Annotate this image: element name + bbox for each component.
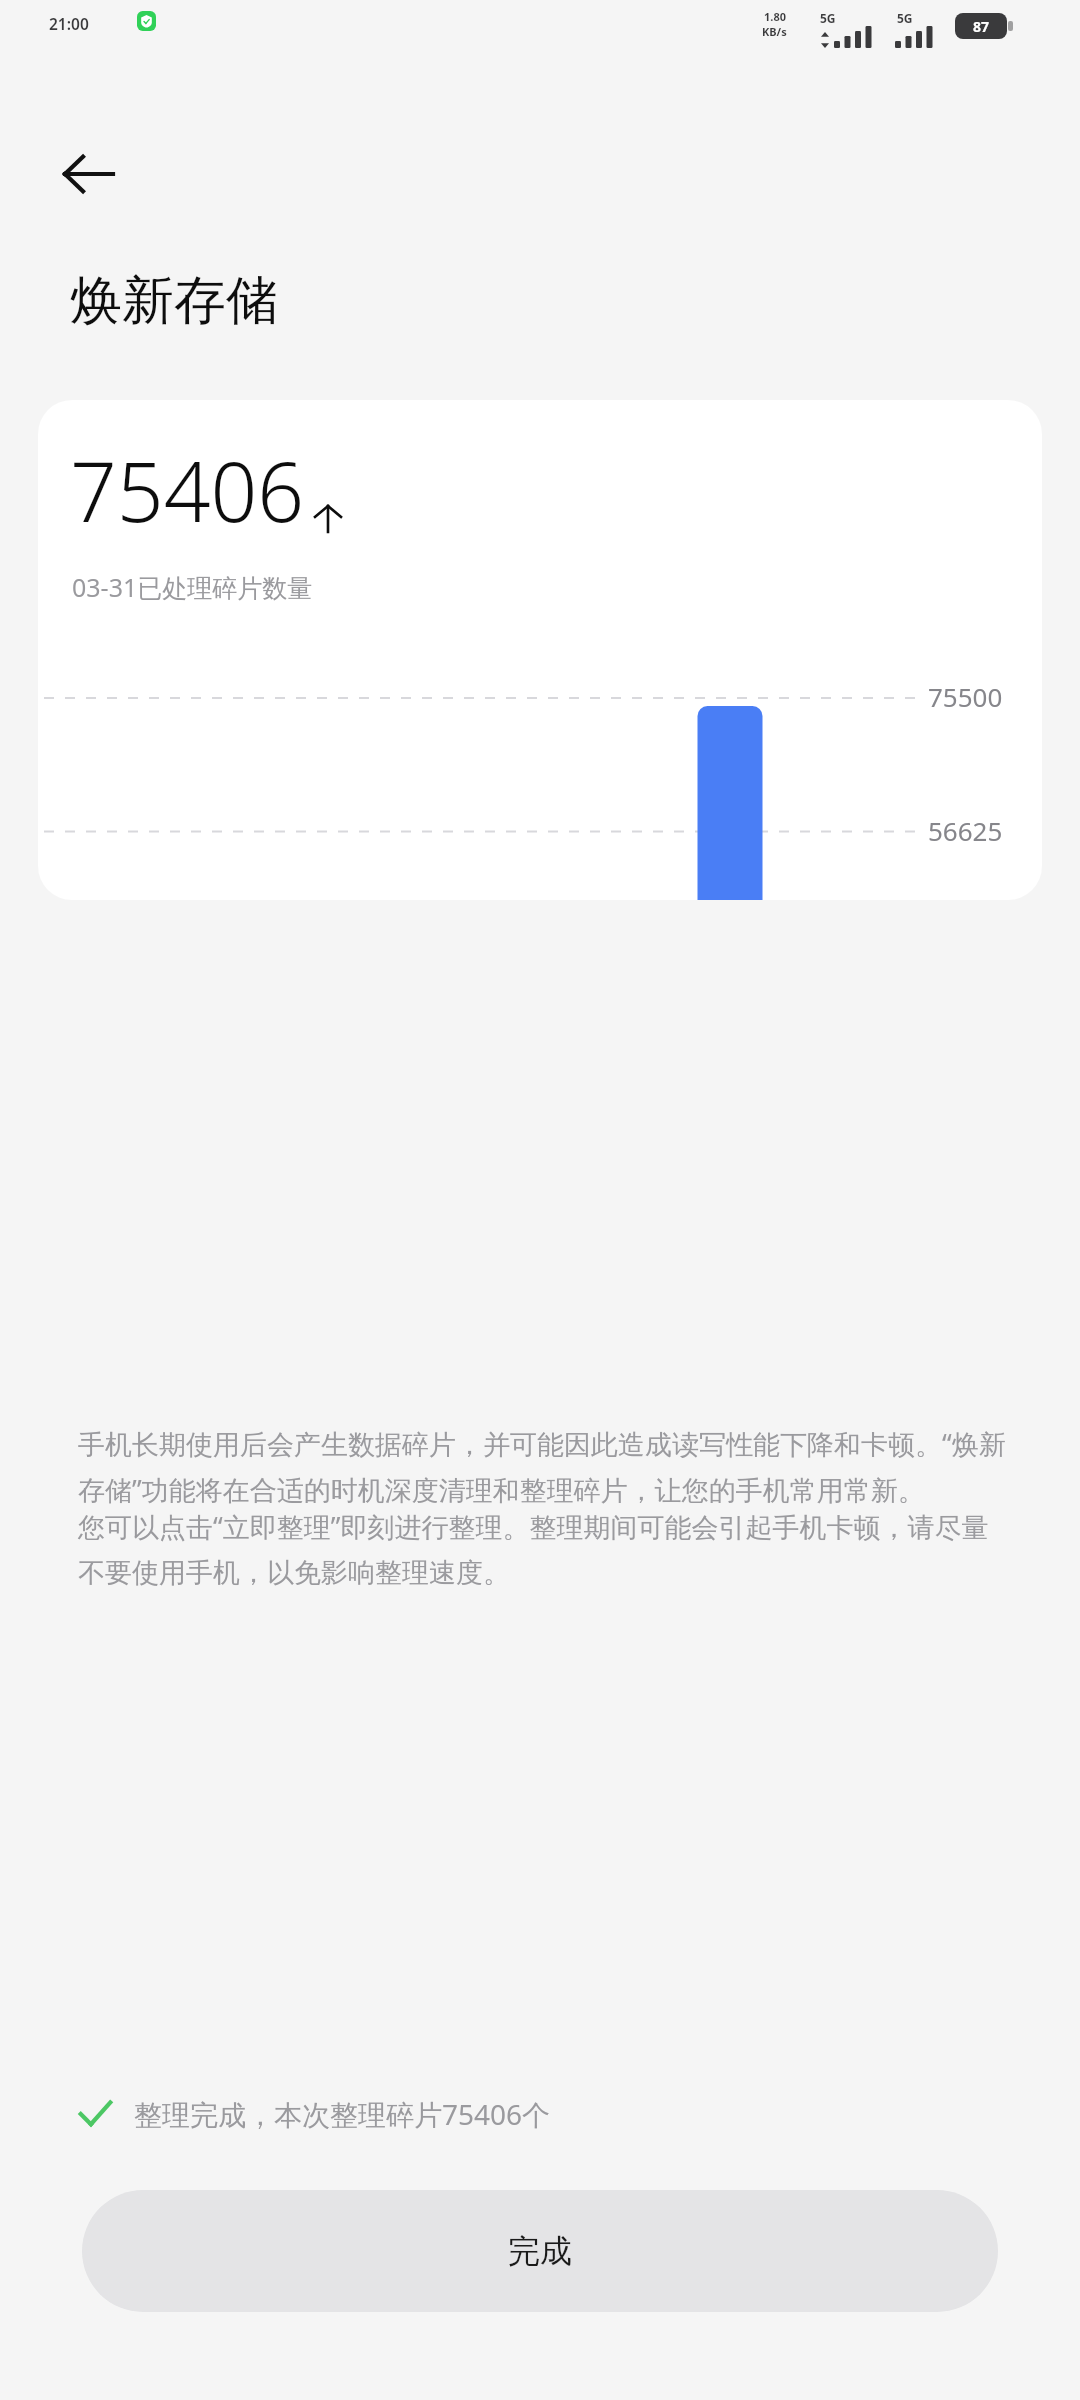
staticText: 完成 — [508, 2231, 572, 2271]
staticText: 您可以点击“立即整理”即刻进行整理。整理期间可能会引起手机卡顿，请尽量不要使用手… — [78, 1508, 1008, 1590]
staticText: 75500 — [928, 679, 1003, 714]
staticText: 5G — [897, 10, 913, 26]
staticText: 21:00 — [49, 13, 89, 34]
button[interactable]: Back — [46, 132, 130, 216]
staticText: KB/s — [762, 24, 787, 39]
staticText: 整理完成，本次整理碎片75406个 — [134, 2095, 551, 2133]
staticText: 03-31已处理碎片数量 — [72, 570, 313, 604]
staticText: 87 — [973, 17, 990, 36]
staticText: 5G — [820, 10, 836, 26]
staticText: 56625 — [928, 813, 1003, 848]
button[interactable]: 完成 — [82, 2190, 998, 2312]
staticText: 焕新存储 — [70, 268, 278, 334]
staticText: 75406 — [70, 434, 305, 546]
staticText: 手机长期使用后会产生数据碎片，并可能因此造成读写性能下降和卡顿。“焕新存储”功能… — [78, 1425, 1008, 1508]
staticText: 1.80 — [764, 9, 786, 24]
